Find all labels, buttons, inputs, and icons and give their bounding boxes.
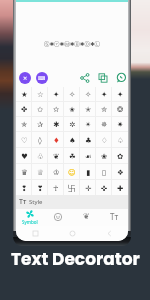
staticText: ♛: [21, 168, 28, 177]
staticText: 卐: [68, 184, 76, 193]
button[interactable]: ☺: [64, 164, 80, 180]
button[interactable]: ♠: [64, 132, 80, 148]
staticText: ✕: [23, 75, 28, 81]
staticText: ✩: [37, 105, 44, 114]
button[interactable]: ♣: [80, 132, 96, 148]
button[interactable]: ▮: [80, 164, 96, 180]
button[interactable]: Copy: [98, 73, 108, 83]
button[interactable]: ❣: [32, 180, 48, 196]
staticText: ☥: [53, 184, 59, 193]
staticText: Ⓢ✱Ⓨ✱Ⓜ✱Ⓑ✱Ⓞ✱Ⓛ: [16, 41, 128, 48]
button[interactable]: ♥: [16, 148, 32, 164]
button[interactable]: ❦: [48, 148, 64, 164]
button[interactable]: ☥: [48, 180, 64, 196]
button[interactable]: ▯: [96, 164, 112, 180]
button[interactable]: ♛: [16, 164, 32, 180]
button[interactable]: ✿: [112, 148, 128, 164]
button[interactable]: Tт: [19, 195, 128, 209]
button[interactable]: ✯: [16, 117, 32, 132]
staticText: ♣: [85, 136, 92, 145]
staticText: ♠: [69, 136, 76, 145]
staticText: ✛: [85, 184, 92, 193]
staticText: ✵: [101, 120, 108, 129]
button[interactable]: ❢: [16, 180, 32, 196]
staticText: ❂: [117, 105, 124, 114]
button[interactable]: ✚: [112, 180, 128, 196]
button[interactable]: ✧: [64, 87, 80, 102]
button[interactable]: ✲: [64, 117, 80, 132]
button[interactable]: Recents: [16, 226, 54, 241]
button[interactable]: Text style: [100, 209, 128, 226]
button[interactable]: Share: [80, 73, 90, 83]
button[interactable]: ❀: [96, 148, 112, 164]
button[interactable]: ✩: [32, 102, 48, 117]
button[interactable]: ✧: [80, 87, 96, 102]
staticText: ✷: [117, 120, 124, 129]
staticText: ◊: [38, 136, 42, 145]
staticText: ★: [21, 90, 28, 99]
button[interactable]: ✮: [96, 102, 112, 117]
button[interactable]: Back: [91, 226, 128, 241]
staticText: ✧: [69, 90, 76, 99]
button[interactable]: ☆: [32, 87, 48, 102]
staticText: Tт: [110, 211, 119, 222]
staticText: ✮: [101, 105, 108, 114]
button[interactable]: Clear: [19, 72, 31, 84]
button[interactable]: Emoji: [44, 209, 72, 226]
staticText: ▯: [102, 168, 107, 177]
button[interactable]: ✜: [96, 180, 112, 196]
button[interactable]: ❂: [112, 102, 128, 117]
staticText: Text Decorator: [11, 247, 140, 271]
button[interactable]: ♦: [48, 132, 64, 148]
staticText: ✭: [85, 105, 92, 114]
button[interactable]: ♢: [96, 132, 112, 148]
staticText: ♔: [53, 168, 60, 177]
button[interactable]: Keyboard: [36, 72, 48, 84]
staticText: ✿: [117, 152, 124, 161]
button[interactable]: Symbol: [16, 209, 44, 226]
button[interactable]: ✫: [48, 102, 64, 117]
button[interactable]: ✬: [64, 102, 80, 117]
button[interactable]: ✛: [80, 180, 96, 196]
button[interactable]: ✰: [32, 117, 48, 132]
staticText: ♤: [117, 136, 124, 145]
staticText: ✫: [53, 105, 60, 114]
button[interactable]: ✱: [48, 117, 64, 132]
button[interactable]: Home: [54, 226, 91, 241]
button[interactable]: ✵: [96, 117, 112, 132]
button[interactable]: Share on WhatsApp: [116, 73, 126, 83]
button[interactable]: ✷: [112, 117, 128, 132]
button[interactable]: ♕: [32, 164, 48, 180]
staticText: ♥: [21, 152, 28, 161]
staticText: ❣: [37, 184, 44, 193]
button[interactable]: ✦: [112, 87, 128, 102]
staticText: ✦: [101, 90, 108, 99]
staticText: ☆: [37, 90, 44, 99]
button[interactable]: ☙: [80, 148, 96, 164]
button[interactable]: ❖: [112, 164, 128, 180]
button[interactable]: ♧: [32, 148, 48, 164]
button[interactable]: Art: [72, 209, 100, 226]
button[interactable]: ♔: [48, 164, 64, 180]
button[interactable]: ♤: [112, 132, 128, 148]
staticText: ✦: [53, 90, 60, 99]
button[interactable]: ✤: [16, 102, 32, 117]
staticText: ✴: [85, 120, 92, 129]
button[interactable]: ◊: [32, 132, 48, 148]
staticText: ☘: [69, 152, 76, 161]
staticText: ❦: [83, 212, 90, 221]
button[interactable]: ♡: [16, 132, 32, 148]
staticText: ▮: [86, 168, 91, 177]
button[interactable]: ✭: [80, 102, 96, 117]
button[interactable]: 卐: [64, 180, 80, 196]
button[interactable]: ✴: [80, 117, 96, 132]
staticText: ♢: [101, 136, 108, 145]
button[interactable]: ✦: [48, 87, 64, 102]
staticText: ♕: [37, 168, 44, 177]
staticText: ✰: [37, 120, 44, 129]
button[interactable]: ★: [16, 87, 32, 102]
staticText: ✚: [117, 184, 124, 193]
button[interactable]: ✦: [96, 87, 112, 102]
button[interactable]: ☘: [64, 148, 80, 164]
staticText: Style: [29, 198, 43, 206]
